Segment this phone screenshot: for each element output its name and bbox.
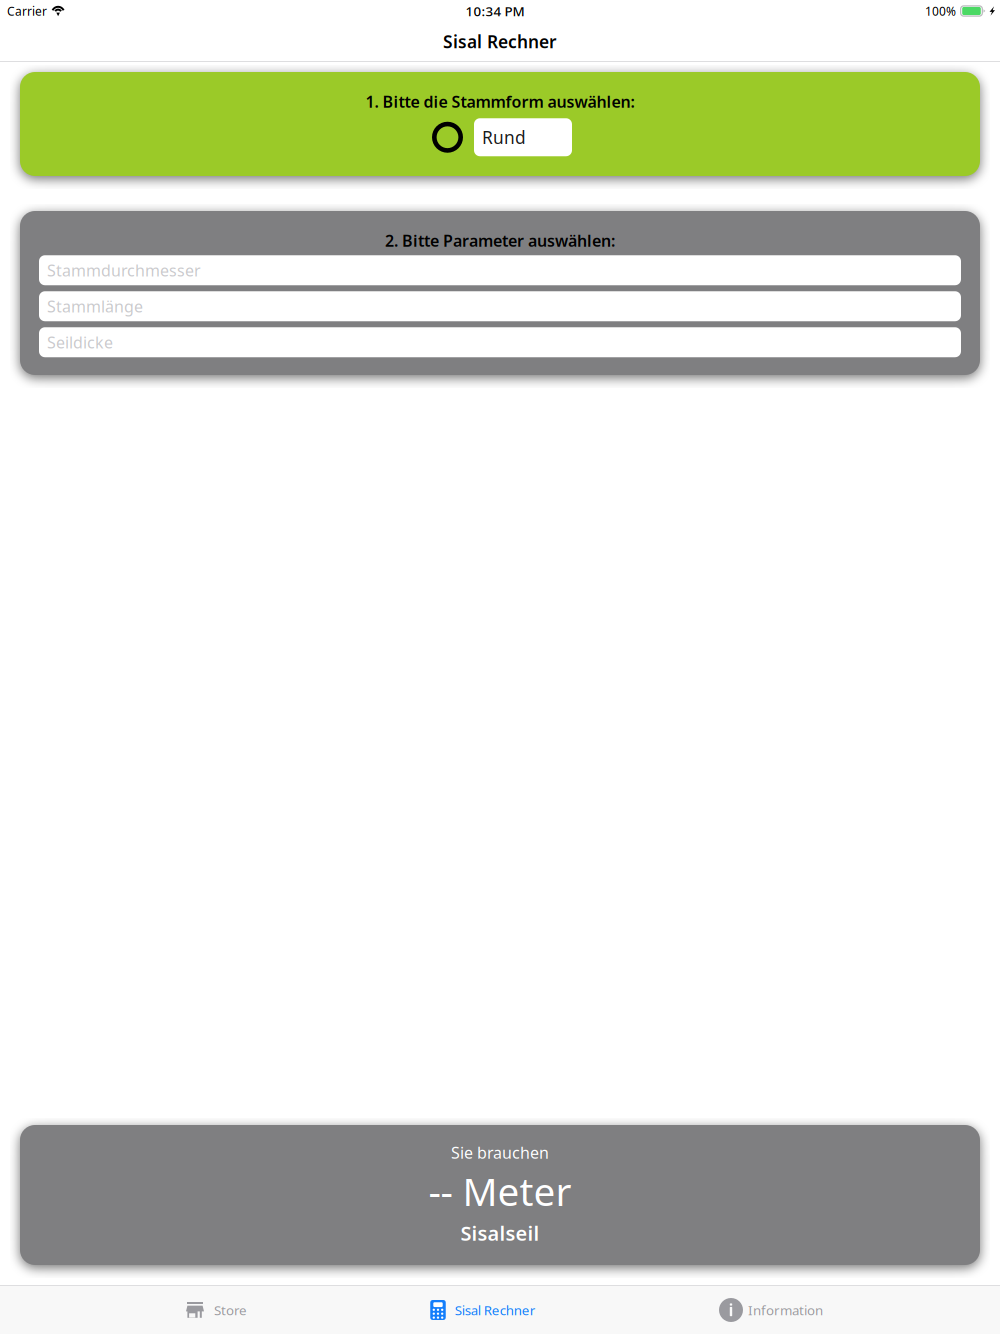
staticText: Sisal Rechner <box>443 30 557 53</box>
button[interactable]: Stammdurchmesser <box>39 255 961 285</box>
staticText: Store <box>214 1301 247 1319</box>
button[interactable]: Sisal Rechner <box>430 1286 536 1334</box>
staticText: Sisalseil <box>460 1220 539 1246</box>
staticText: Stammdurchmesser <box>47 260 201 281</box>
button[interactable]: Seildicke <box>39 327 961 357</box>
staticText: Rund <box>482 126 526 149</box>
staticText: Sie brauchen <box>451 1142 549 1163</box>
staticText: 2. Bitte Parameter auswählen: <box>385 230 615 251</box>
staticText: -- Meter <box>428 1165 571 1216</box>
staticText: Information <box>748 1301 823 1319</box>
staticText: Carrier <box>7 3 47 19</box>
staticText: 10:34 PM <box>466 2 525 20</box>
button[interactable]: Rund <box>474 118 572 156</box>
staticText: Sisal Rechner <box>455 1301 536 1319</box>
button[interactable]: Store <box>186 1286 247 1334</box>
staticText: 1. Bitte die Stammform auswählen: <box>365 91 634 112</box>
staticText: 100% <box>925 3 956 19</box>
button[interactable]: Information <box>719 1286 823 1334</box>
button[interactable]: Stammlänge <box>39 291 961 321</box>
staticText: Stammlänge <box>47 296 143 317</box>
staticText: Seildicke <box>47 332 113 353</box>
